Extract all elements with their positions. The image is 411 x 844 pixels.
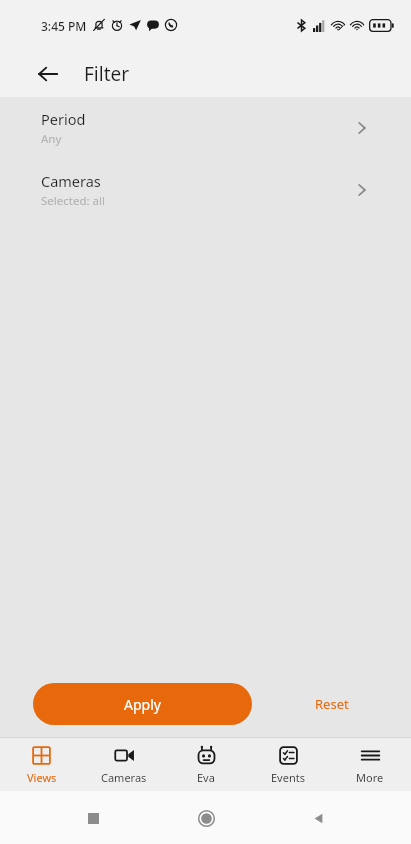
button[interactable]: Back [298,798,338,838]
staticText: More [356,770,384,785]
button[interactable]: Reset [252,670,411,737]
staticText: Any [41,131,62,147]
staticText: Views [27,770,57,785]
button[interactable]: Events [247,738,329,791]
staticText: Cameras [101,770,147,785]
button[interactable]: Home [186,798,226,838]
button[interactable]: Back [28,54,68,94]
button[interactable]: Cameras [83,738,165,791]
staticText: Cameras [41,171,101,191]
button[interactable]: Cameras [0,170,411,210]
button[interactable]: Eva [165,738,247,791]
staticText: Events [271,770,305,785]
button[interactable]: More [329,738,411,791]
button[interactable]: Views [0,738,83,791]
staticText: Period [41,109,86,129]
staticText: Filter [84,61,130,87]
button[interactable]: Apply [33,683,252,725]
button[interactable]: Period [0,108,411,148]
staticText: Eva [197,770,215,785]
staticText: 3:45 PM [41,18,87,34]
button[interactable]: Recents [73,798,113,838]
staticText: Apply [124,695,161,714]
staticText: Selected: all [41,193,105,209]
staticText: Reset [315,695,349,713]
